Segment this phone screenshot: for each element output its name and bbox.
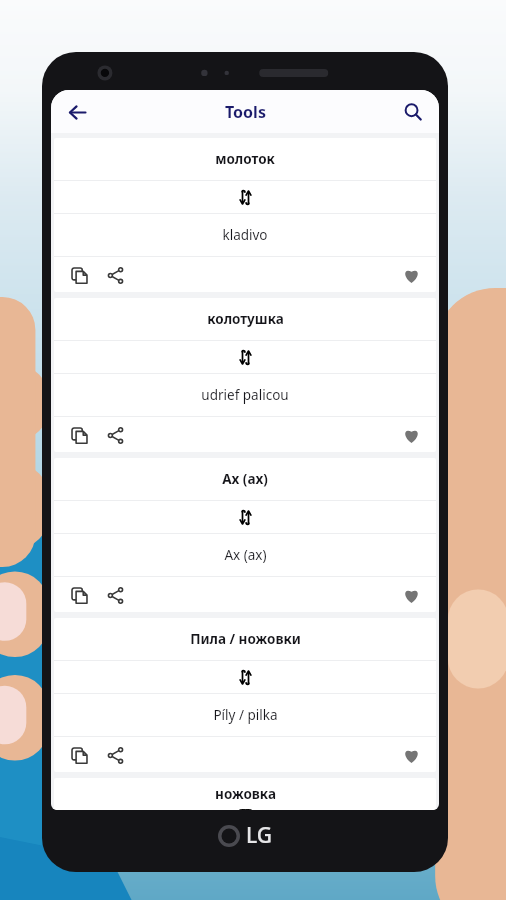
staticText: kladivo [222, 226, 268, 244]
button[interactable]: Search [393, 92, 433, 132]
staticText: LG [246, 821, 273, 850]
staticText: молоток [215, 150, 275, 168]
staticText: колотушка [207, 310, 284, 328]
staticText: Ax (ax) [224, 546, 267, 564]
button[interactable]: колотушка [54, 298, 436, 452]
button[interactable]: Share [100, 740, 130, 770]
button[interactable]: Favorite [396, 740, 426, 770]
button[interactable]: Copy [64, 580, 94, 610]
button[interactable]: Copy [64, 420, 94, 450]
button[interactable]: ножовка [54, 778, 436, 810]
button[interactable]: Copy [64, 740, 94, 770]
button[interactable]: Share [100, 260, 130, 290]
button[interactable]: Пила / ножовки [54, 618, 436, 772]
button[interactable]: Share [100, 580, 130, 610]
staticText: Píly / pilka [213, 706, 278, 724]
button[interactable]: Share [100, 420, 130, 450]
staticText: ножовка [215, 785, 276, 803]
button[interactable]: Favorite [396, 580, 426, 610]
button[interactable]: Back [57, 92, 97, 132]
staticText: udrief palicou [201, 386, 289, 404]
staticText: Tools [225, 101, 266, 123]
button[interactable]: молоток [54, 138, 436, 292]
staticText: Пила / ножовки [190, 630, 301, 648]
button[interactable]: Copy [64, 260, 94, 290]
button[interactable]: Favorite [396, 260, 426, 290]
button[interactable]: Ax (ax) [54, 458, 436, 612]
button[interactable]: Favorite [396, 420, 426, 450]
staticText: Ax (ax) [222, 470, 268, 488]
